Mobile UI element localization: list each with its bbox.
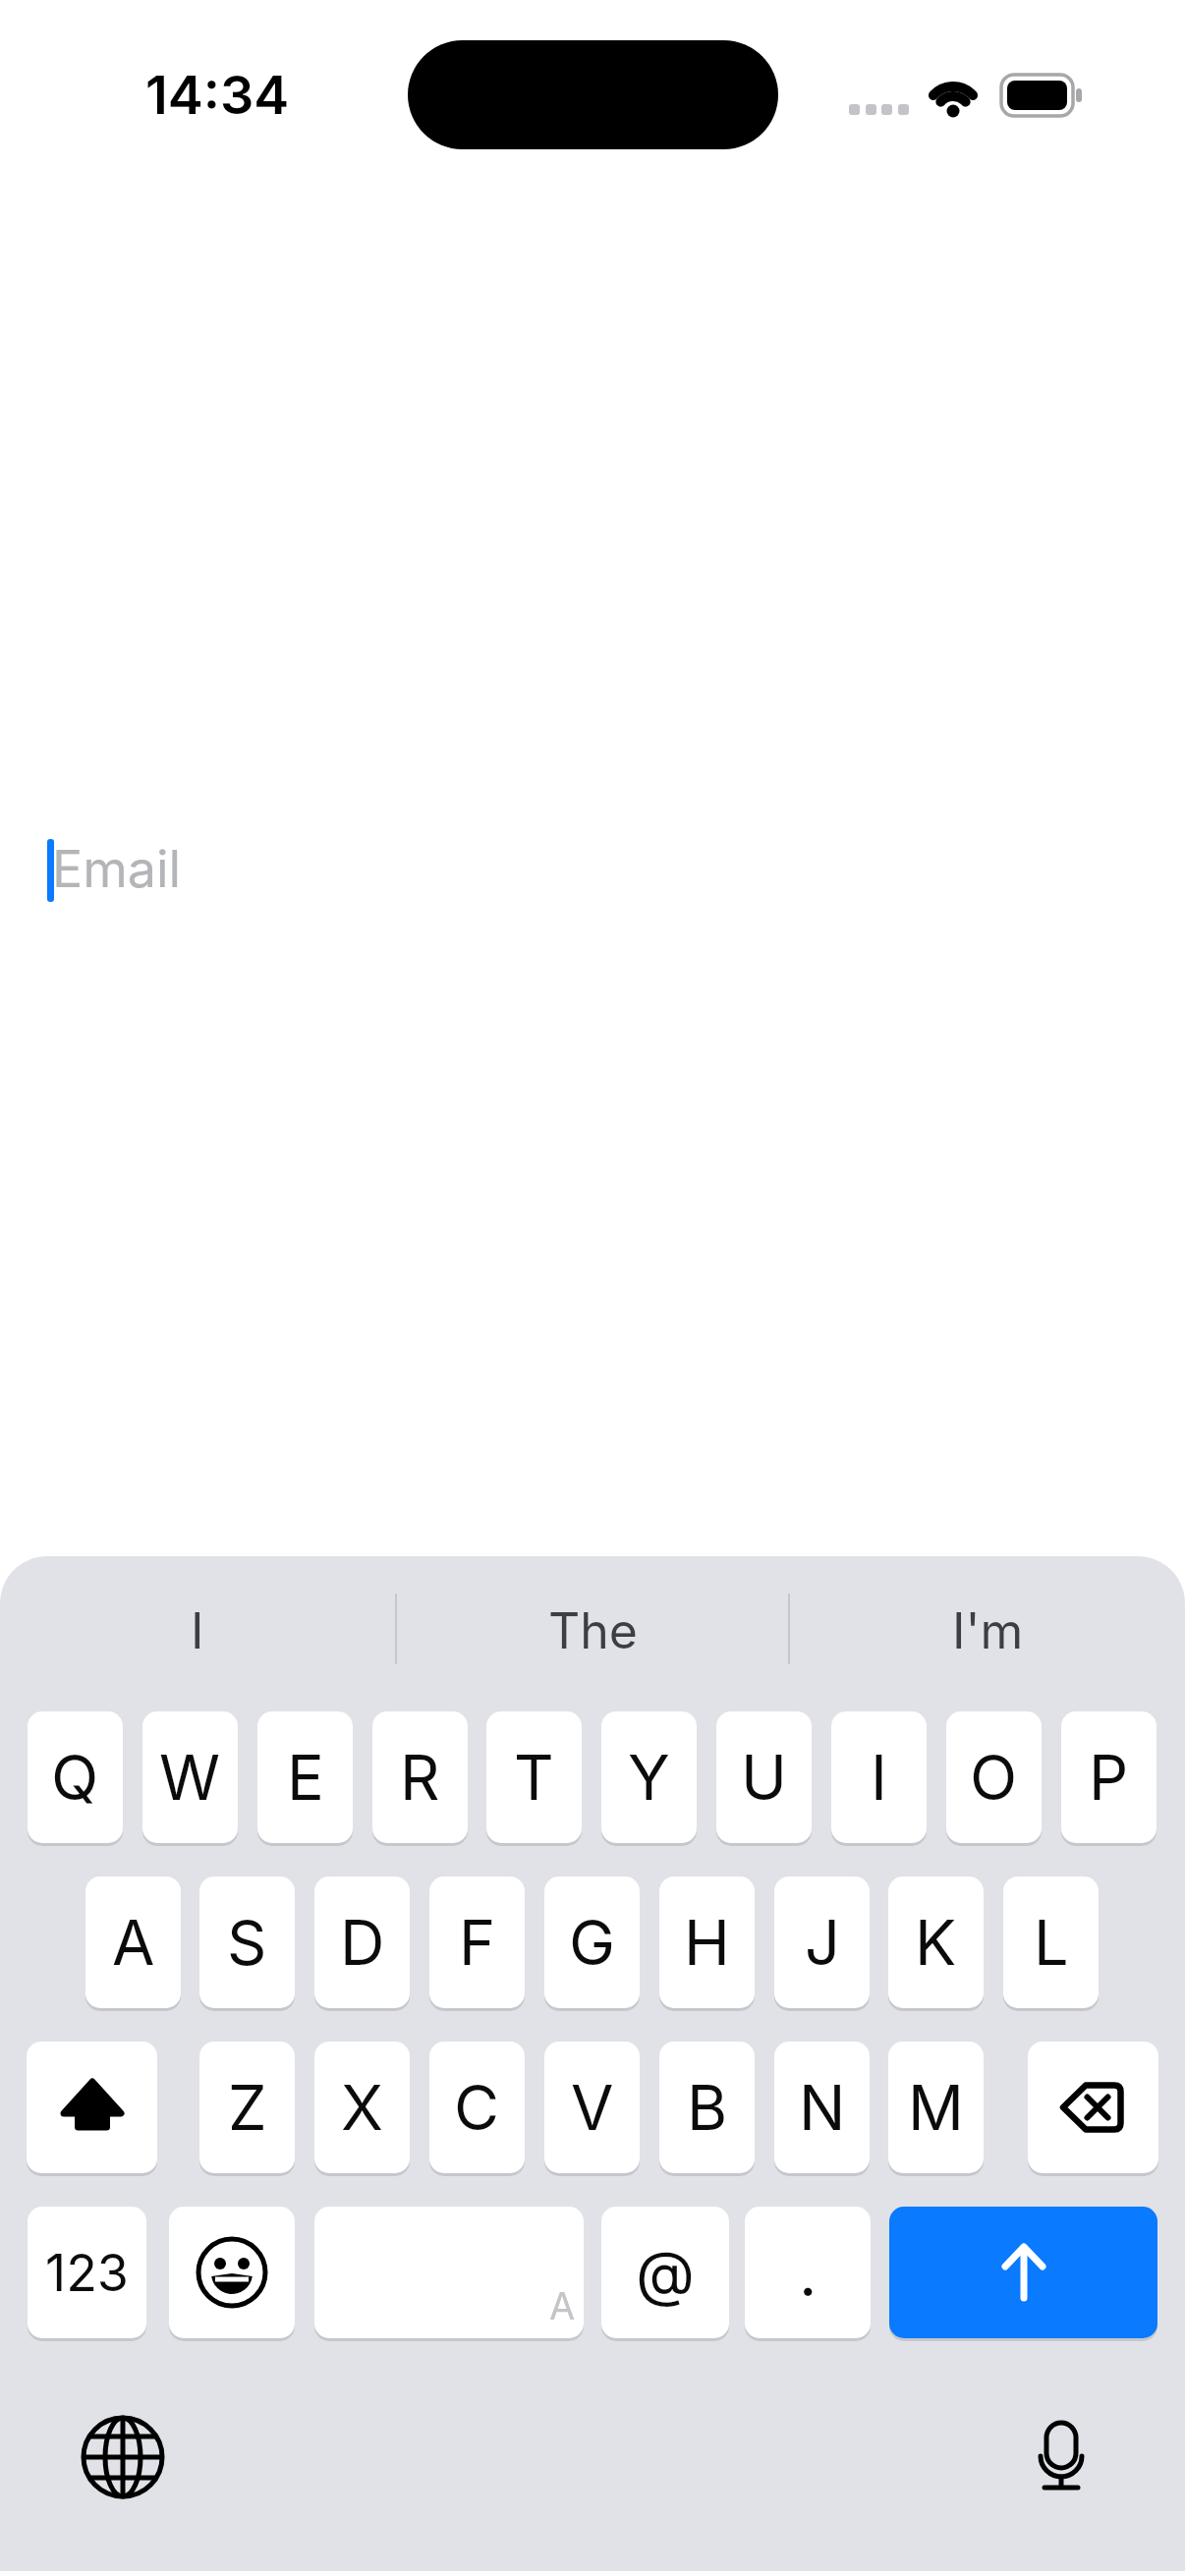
staticText: C xyxy=(454,2070,500,2145)
staticText: E xyxy=(287,1740,324,1815)
staticText: 123 xyxy=(45,2242,129,2304)
button[interactable] xyxy=(889,2207,1157,2338)
button[interactable] xyxy=(27,2042,157,2173)
staticText: Y xyxy=(628,1740,670,1815)
button[interactable]: I xyxy=(0,1584,395,1678)
button[interactable]: W xyxy=(142,1711,238,1843)
staticText: T xyxy=(514,1740,554,1815)
staticText: . xyxy=(799,2235,818,2311)
button[interactable]: Z xyxy=(199,2042,295,2173)
button[interactable]: O xyxy=(946,1711,1042,1843)
button[interactable]: I xyxy=(831,1711,927,1843)
button[interactable] xyxy=(314,2207,584,2338)
button[interactable]: @ xyxy=(601,2207,729,2338)
button[interactable]: N xyxy=(774,2042,870,2173)
button[interactable] xyxy=(1028,2042,1158,2173)
button[interactable]: M xyxy=(888,2042,984,2173)
staticText: U xyxy=(741,1740,787,1815)
button[interactable]: K xyxy=(888,1876,984,2008)
staticText: 14:34 xyxy=(145,63,290,127)
button[interactable]: H xyxy=(659,1876,755,2008)
staticText: N xyxy=(799,2070,846,2145)
staticText: S xyxy=(227,1905,267,1980)
staticText: @ xyxy=(636,2236,695,2310)
staticText: O xyxy=(970,1740,1018,1815)
button[interactable]: P xyxy=(1061,1711,1157,1843)
button[interactable]: C xyxy=(429,2042,525,2173)
button[interactable]: V xyxy=(544,2042,640,2173)
button[interactable]: A xyxy=(85,1876,181,2008)
button[interactable]: B xyxy=(659,2042,755,2173)
staticText: V xyxy=(571,2070,614,2145)
button[interactable]: I'm xyxy=(790,1584,1185,1678)
staticText: D xyxy=(340,1905,385,1980)
staticText: The xyxy=(548,1601,638,1660)
staticText: Q xyxy=(51,1740,99,1815)
button[interactable]: E xyxy=(257,1711,353,1843)
button[interactable]: J xyxy=(774,1876,870,2008)
staticText: A xyxy=(549,2283,576,2328)
staticText: P xyxy=(1089,1740,1129,1815)
staticText: A xyxy=(112,1905,155,1980)
staticText: I'm xyxy=(952,1601,1024,1660)
staticText: H xyxy=(684,1905,730,1980)
button[interactable]: Q xyxy=(28,1711,123,1843)
staticText: Z xyxy=(228,2070,267,2145)
button[interactable]: T xyxy=(486,1711,582,1843)
button[interactable]: The xyxy=(395,1584,790,1678)
staticText: Email xyxy=(52,838,182,900)
button[interactable] xyxy=(169,2207,295,2338)
staticText: X xyxy=(341,2070,383,2145)
button[interactable]: D xyxy=(314,1876,410,2008)
staticText: G xyxy=(569,1905,616,1980)
button[interactable]: S xyxy=(199,1876,295,2008)
button[interactable]: L xyxy=(1003,1876,1099,2008)
button[interactable]: Email xyxy=(44,815,1145,924)
button[interactable] xyxy=(1012,2403,1110,2511)
button[interactable]: R xyxy=(372,1711,468,1843)
staticText: L xyxy=(1034,1905,1069,1980)
button[interactable]: X xyxy=(314,2042,410,2173)
staticText: R xyxy=(400,1740,440,1815)
button[interactable]: F xyxy=(429,1876,525,2008)
button[interactable]: U xyxy=(716,1711,812,1843)
staticText: J xyxy=(805,1905,840,1980)
staticText: I xyxy=(191,1601,204,1660)
button[interactable]: Y xyxy=(601,1711,697,1843)
button[interactable]: . xyxy=(745,2207,871,2338)
button[interactable]: G xyxy=(544,1876,640,2008)
staticText: I xyxy=(871,1740,887,1815)
staticText: B xyxy=(687,2070,728,2145)
staticText: K xyxy=(915,1905,957,1980)
button[interactable]: 123 xyxy=(28,2207,146,2338)
staticText: W xyxy=(159,1740,221,1815)
staticText: M xyxy=(908,2070,964,2145)
button[interactable] xyxy=(69,2403,177,2511)
staticText: F xyxy=(459,1905,496,1980)
